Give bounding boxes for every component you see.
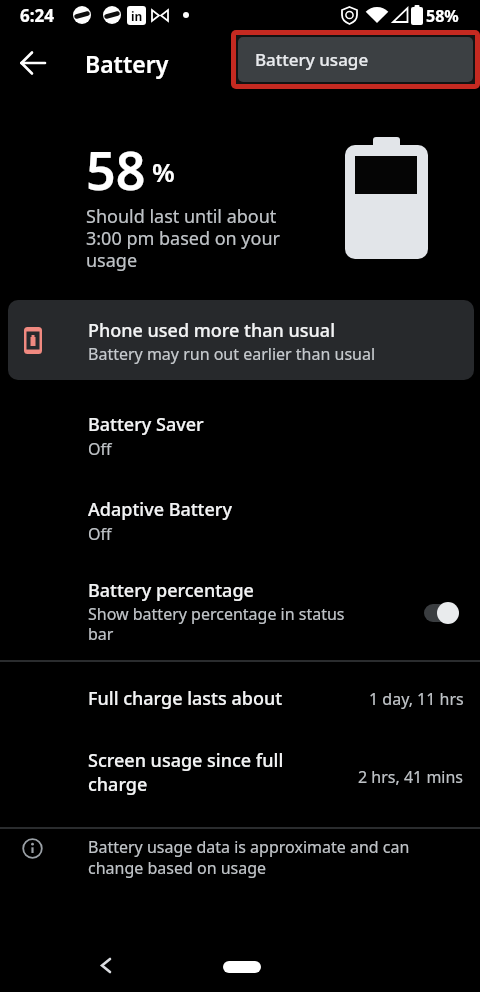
staticText: Adaptive Battery xyxy=(88,497,232,522)
staticText: Battery xyxy=(85,48,169,79)
staticText: 58 xyxy=(86,134,146,205)
staticText: Battery Saver xyxy=(88,412,204,437)
button[interactable] xyxy=(223,961,261,973)
staticText: % xyxy=(152,154,175,189)
button[interactable]: Adaptive Battery xyxy=(0,484,480,564)
button[interactable]: Full charge lasts about xyxy=(0,676,480,720)
staticText: Off xyxy=(88,523,112,545)
staticText: 58% xyxy=(426,5,459,27)
staticText: 2 hrs, 41 mins xyxy=(358,766,464,788)
staticText: Battery may run out earlier than usual xyxy=(88,343,376,365)
staticText: Phone used more than usual xyxy=(88,318,335,343)
button[interactable]: Battery Saver xyxy=(0,398,480,478)
button[interactable] xyxy=(20,50,47,76)
staticText: in xyxy=(131,8,143,24)
button[interactable] xyxy=(100,958,112,973)
button[interactable]: Battery percentage xyxy=(0,568,480,656)
staticText: Screen usage since full charge xyxy=(88,748,284,796)
staticText: Battery usage xyxy=(255,48,369,71)
staticText: Battery usage data is approximate and ca… xyxy=(88,836,410,879)
staticText: 6:24 xyxy=(20,4,54,27)
button[interactable]: Screen usage since full charge xyxy=(0,740,480,810)
staticText: Off xyxy=(88,438,112,460)
staticText: Battery percentage xyxy=(88,578,254,603)
button[interactable]: Battery usage xyxy=(238,37,473,82)
staticText: Full charge lasts about xyxy=(88,686,283,711)
staticText: Show battery percentage in status bar xyxy=(88,603,345,644)
staticText: 1 day, 11 hrs xyxy=(369,688,464,710)
button[interactable]: Phone used more than usual xyxy=(8,300,474,380)
staticText: Should last until about 3:00 pm based on… xyxy=(86,204,280,272)
